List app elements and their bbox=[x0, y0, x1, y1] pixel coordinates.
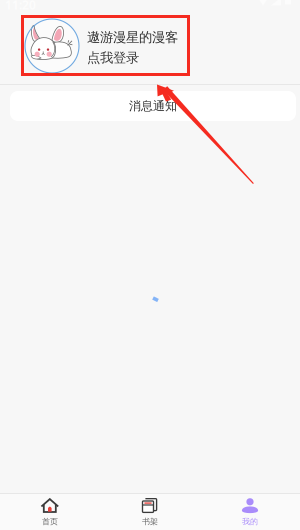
staticText: 书架 bbox=[142, 517, 158, 526]
staticText: 遨游漫星的漫客 bbox=[87, 29, 178, 45]
staticText: 我的 bbox=[242, 517, 258, 526]
button[interactable]: 遨游漫星的漫客 bbox=[0, 20, 300, 72]
staticText: 点我登录 bbox=[87, 49, 139, 66]
button[interactable]: 我的 bbox=[200, 494, 300, 530]
button[interactable]: 首页 bbox=[0, 494, 100, 530]
staticText: 首页 bbox=[42, 517, 58, 526]
staticText: 消息通知 bbox=[129, 99, 177, 113]
button[interactable]: 消息通知 bbox=[10, 91, 296, 121]
button[interactable]: 书架 bbox=[100, 494, 200, 530]
